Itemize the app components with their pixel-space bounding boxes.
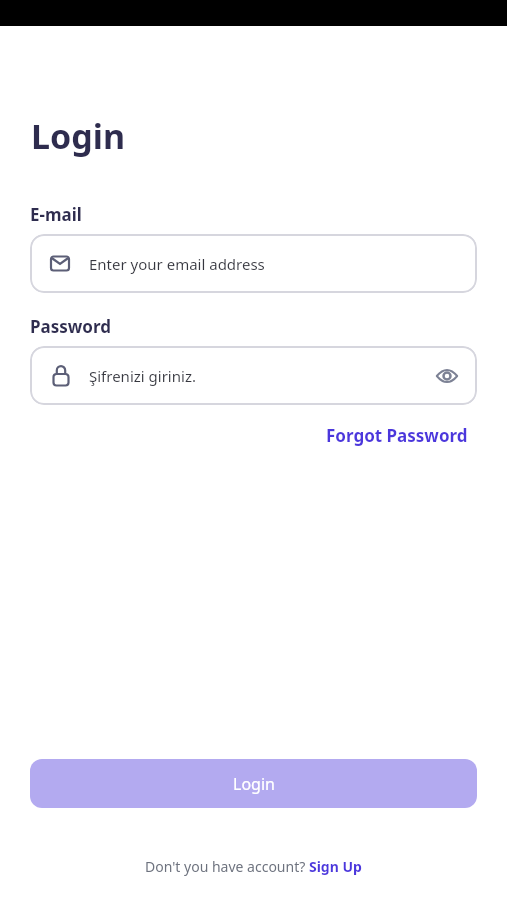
- button[interactable]: Login: [30, 759, 477, 808]
- staticText: Enter your email address: [89, 254, 265, 274]
- staticText: Login: [233, 773, 275, 795]
- button[interactable]: Don't you have account? Sign Up: [0, 852, 507, 880]
- staticText: Password: [30, 315, 111, 338]
- staticText: Şifrenizi giriniz.: [89, 366, 196, 386]
- button[interactable]: [435, 364, 459, 388]
- staticText: E-mail: [30, 203, 82, 226]
- button[interactable]: Şifrenizi giriniz.: [30, 346, 477, 405]
- button[interactable]: Enter your email address: [30, 234, 477, 293]
- button[interactable]: Forgot Password: [326, 424, 468, 447]
- staticText: Don't you have account? Sign Up: [145, 857, 362, 876]
- staticText: Login: [31, 113, 126, 159]
